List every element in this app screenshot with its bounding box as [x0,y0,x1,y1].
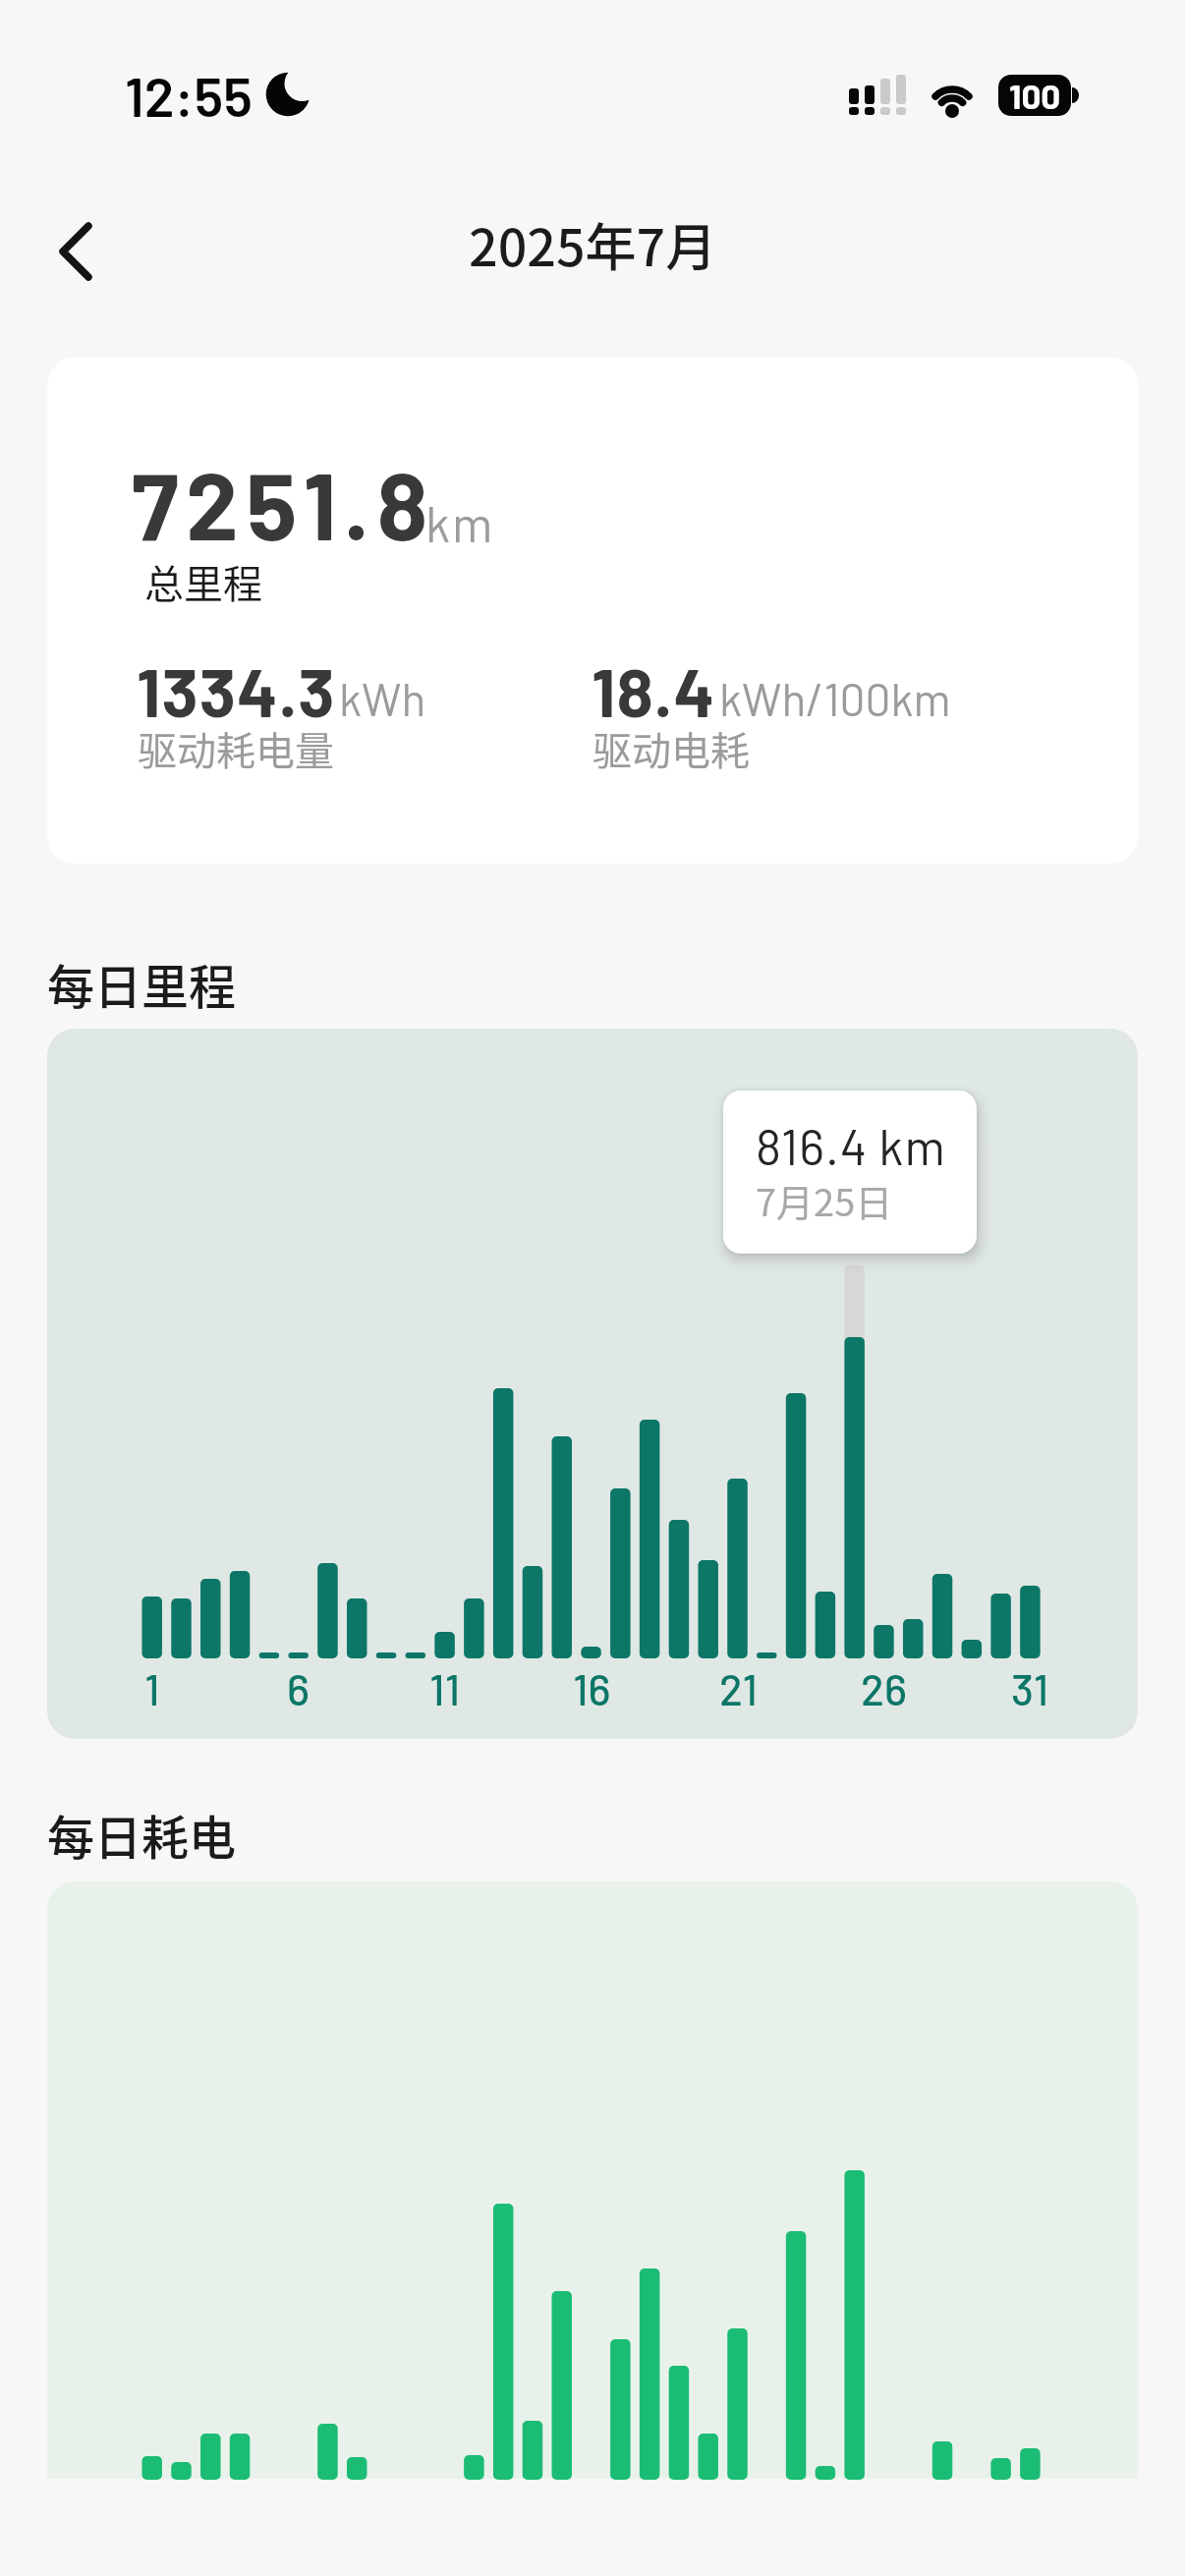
staticText: 21 [719,1662,758,1714]
staticText: 每日里程 [47,949,237,1018]
staticText: 18.4 [592,649,716,731]
staticText: 总里程 [144,553,262,610]
button[interactable] [32,208,119,295]
staticText: 1 [144,1662,160,1714]
staticText: 2025年7月 [469,207,717,281]
staticText: 11 [429,1662,461,1714]
staticText: 16 [573,1662,611,1714]
staticText: 12:55 [125,62,253,128]
staticText: kWh [339,671,426,725]
staticText: 驱动耗电量 [138,720,334,777]
staticText: 7月25日 [756,1173,893,1227]
staticText: 1334.3 [137,649,336,731]
staticText: 816.4 km [756,1116,946,1175]
button[interactable]: 1 [47,1029,1138,1739]
staticText: km [425,493,495,552]
staticText: 100 [1009,75,1061,116]
staticText: 7251.8 [132,446,435,559]
staticText: 每日耗电 [47,1800,237,1869]
staticText: 驱动电耗 [592,720,750,777]
staticText: 6 [287,1662,310,1714]
staticText: 26 [861,1662,907,1714]
staticText: kWh/100km [719,671,951,725]
button[interactable] [47,1881,1138,2479]
staticText: 31 [1011,1662,1049,1714]
